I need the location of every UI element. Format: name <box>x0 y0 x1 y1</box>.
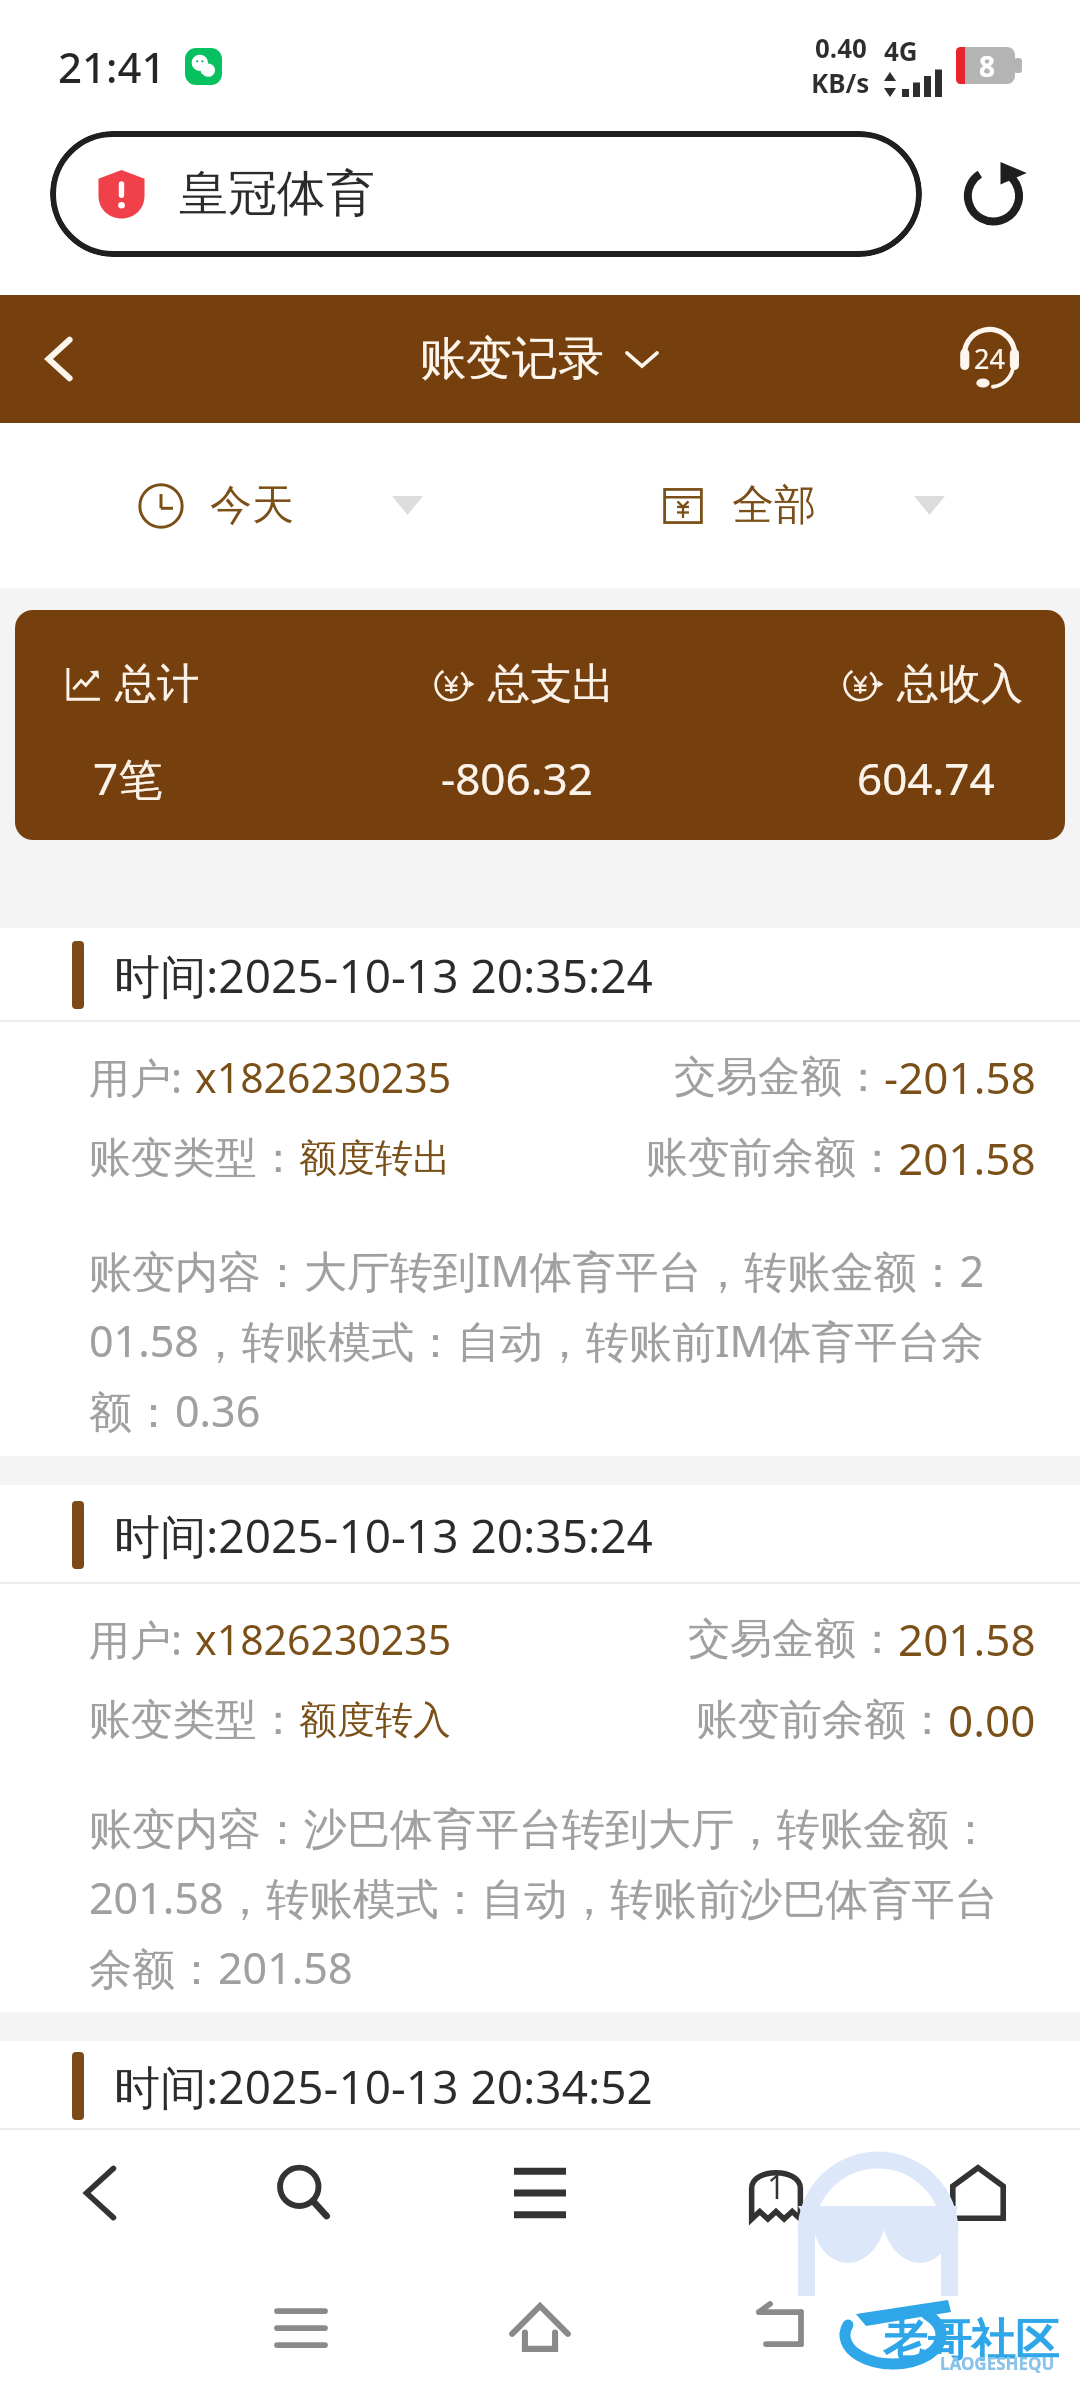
staticText: 7笔 <box>93 748 163 808</box>
button[interactable]: 皇冠体育 <box>50 131 922 257</box>
button[interactable]: Tabs, 1 open <box>742 2159 810 2227</box>
button[interactable]: Back <box>12 311 108 407</box>
staticText: 账变类型： <box>89 1694 299 1747</box>
button[interactable]: Search <box>263 2153 343 2233</box>
button[interactable]: Customer service <box>943 315 1039 411</box>
staticText: 8 <box>979 47 996 84</box>
staticText: 总计 <box>115 658 199 711</box>
button[interactable]: Home <box>500 2288 580 2368</box>
button[interactable]: 账变记录 <box>420 330 660 388</box>
staticText: -201.58 <box>884 1047 1036 1107</box>
staticText: 4G <box>884 33 918 68</box>
button[interactable]: 用户: <box>0 1022 1080 1456</box>
staticText: 账变记录 <box>420 330 604 388</box>
staticText: 1 <box>767 2165 786 2209</box>
staticText: 额度转入 <box>299 1696 451 1744</box>
staticText: 全部 <box>732 479 816 532</box>
staticText: LAOGESHEQU <box>940 2352 1055 2375</box>
button[interactable]: Back <box>60 2153 140 2233</box>
button[interactable]: Refresh <box>950 148 1042 240</box>
button[interactable]: 时间:2025-10-13 20:35:24 <box>0 928 1080 1022</box>
staticText: 时间:2025-10-13 20:35:24 <box>114 1504 653 1567</box>
staticText: 账变内容：沙巴体育平台转到大厅，转账金额： 201.58，转账模式：自动，转账前… <box>89 1803 998 1996</box>
staticText: 额度转出 <box>299 1134 451 1182</box>
staticText: 账变前余额： <box>646 1132 898 1185</box>
staticText: 时间:2025-10-13 20:35:24 <box>114 944 653 1007</box>
staticText: x1826230235 <box>195 1611 452 1667</box>
button[interactable]: Home <box>938 2153 1018 2233</box>
staticText: 今天 <box>210 479 294 532</box>
staticText: 0.40 <box>815 30 867 65</box>
button[interactable]: Recents <box>261 2288 341 2368</box>
staticText: 总收入 <box>897 658 1023 711</box>
staticText: 24 <box>974 340 1005 377</box>
staticText: 交易金额： <box>674 1051 884 1104</box>
staticText: -806.32 <box>441 748 593 808</box>
staticText: KB/s <box>811 65 870 100</box>
staticText: 604.74 <box>857 748 995 808</box>
button[interactable]: 全部 <box>660 479 945 532</box>
button[interactable]: 今天 <box>138 479 423 532</box>
staticText: 交易金额： <box>688 1613 898 1666</box>
staticText: 21:41 <box>58 38 166 95</box>
staticText: 账变类型： <box>89 1132 299 1185</box>
button[interactable]: 用户: <box>0 1584 1080 2012</box>
button[interactable]: 时间:2025-10-13 20:34:52 <box>0 2041 1080 2130</box>
staticText: 201.58 <box>898 1609 1036 1669</box>
staticText: 用户: <box>89 1611 182 1667</box>
staticText: 账变前余额： <box>696 1694 948 1747</box>
button[interactable]: 总计 <box>15 610 1065 840</box>
staticText: 总支出 <box>488 658 614 711</box>
staticText: 时间:2025-10-13 20:34:52 <box>114 2055 653 2118</box>
button[interactable]: Back <box>740 2288 820 2368</box>
staticText: 账变内容：大厅转到IM体育平台，转账金额：2 01.58，转账模式：自动，转账前… <box>89 1241 985 1439</box>
staticText: 皇冠体育 <box>179 163 375 225</box>
staticText: 0.00 <box>948 1690 1036 1750</box>
button[interactable]: 时间:2025-10-13 20:35:24 <box>0 1485 1080 1584</box>
button[interactable]: Menu <box>500 2153 580 2233</box>
staticText: 老哥社区 <box>883 2313 1059 2368</box>
staticText: x1826230235 <box>195 1049 452 1105</box>
staticText: 201.58 <box>898 1128 1036 1188</box>
staticText: 用户: <box>89 1049 182 1105</box>
